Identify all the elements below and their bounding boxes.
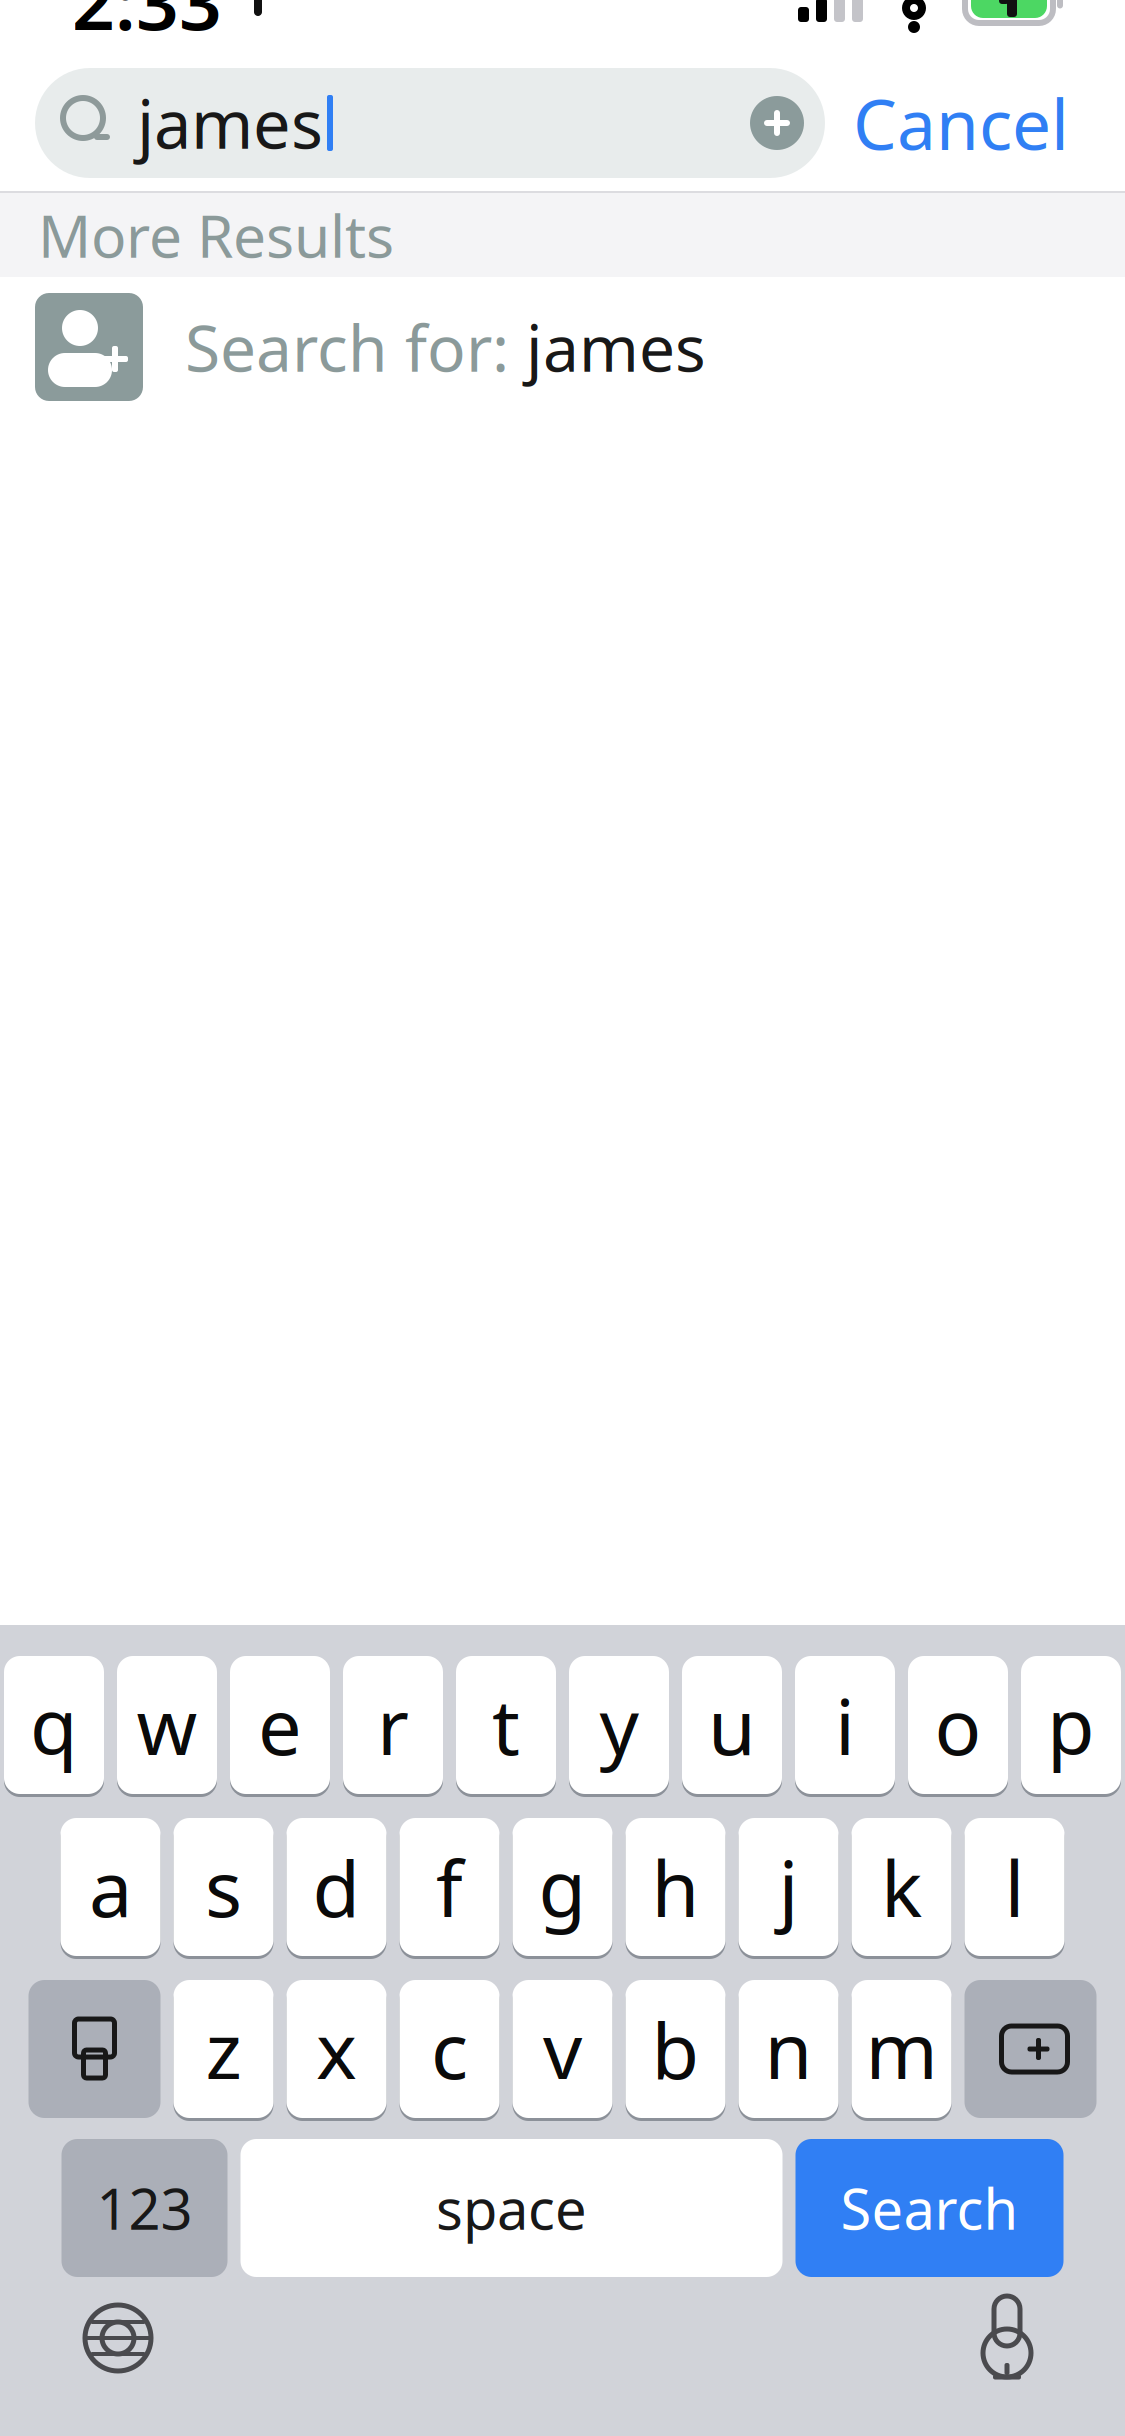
staticText: q <box>30 1674 78 1776</box>
button[interactable]: Shift <box>28 1980 160 2118</box>
button[interactable]: Dictate <box>947 2283 1067 2393</box>
staticText: p <box>1047 1674 1095 1776</box>
staticText: x <box>316 1998 357 2100</box>
staticText: b <box>651 1998 699 2100</box>
button[interactable]: i <box>795 1653 895 1797</box>
staticText: n <box>764 1998 812 2100</box>
staticText: u <box>708 1674 756 1776</box>
staticText: k <box>881 1836 922 1938</box>
button[interactable]: z <box>173 1977 273 2121</box>
staticText: v <box>543 1998 582 2100</box>
button[interactable]: p <box>1021 1653 1121 1797</box>
button[interactable]: m <box>851 1977 951 2121</box>
staticText: s <box>205 1836 242 1938</box>
staticText: z <box>205 1998 241 2100</box>
staticText: space <box>436 2171 587 2245</box>
staticText: h <box>651 1836 699 1938</box>
button[interactable]: Next keyboard <box>58 2283 178 2393</box>
staticText: t <box>492 1674 520 1776</box>
button[interactable]: 123 <box>61 2139 227 2277</box>
staticText: james <box>137 79 323 167</box>
button[interactable]: f <box>399 1815 499 1959</box>
staticText: y <box>599 1674 638 1776</box>
button[interactable]: b <box>625 1977 725 2121</box>
staticText: Cancel <box>853 77 1069 169</box>
staticText: Search for: <box>185 304 526 389</box>
button[interactable]: Cancel <box>825 68 1097 178</box>
button[interactable]: y <box>569 1653 669 1797</box>
staticText: c <box>431 1998 468 2100</box>
button[interactable]: Search <box>795 2139 1063 2277</box>
button[interactable]: l <box>964 1815 1064 1959</box>
button[interactable]: t <box>456 1653 556 1797</box>
staticText: j <box>778 1836 798 1938</box>
button[interactable]: r <box>343 1653 443 1797</box>
staticText: f <box>436 1836 463 1938</box>
staticText: w <box>136 1674 197 1776</box>
button[interactable]: e <box>230 1653 330 1797</box>
staticText: Search <box>840 2171 1018 2245</box>
staticText: 2:33 <box>72 0 222 51</box>
button[interactable]: o <box>908 1653 1008 1797</box>
staticText: 123 <box>96 2171 192 2245</box>
staticText: james <box>526 304 706 389</box>
button[interactable]: v <box>512 1977 612 2121</box>
button[interactable]: q <box>4 1653 104 1797</box>
button[interactable]: c <box>399 1977 499 2121</box>
staticText: m <box>865 1998 937 2100</box>
button[interactable]: s <box>173 1815 273 1959</box>
staticText: g <box>538 1836 586 1938</box>
staticText: o <box>934 1674 981 1776</box>
staticText: e <box>258 1674 302 1776</box>
button[interactable]: x <box>286 1977 386 2121</box>
button[interactable]: Clear text <box>729 68 825 178</box>
button[interactable]: space <box>240 2139 782 2277</box>
staticText: a <box>89 1836 132 1938</box>
button[interactable]: h <box>625 1815 725 1959</box>
button[interactable]: j <box>738 1815 838 1959</box>
staticText: l <box>1004 1836 1024 1938</box>
staticText: d <box>312 1836 360 1938</box>
staticText: r <box>377 1674 409 1776</box>
button[interactable]: n <box>738 1977 838 2121</box>
staticText: More Results <box>38 196 394 274</box>
button[interactable]: k <box>851 1815 951 1959</box>
button[interactable]: a <box>60 1815 160 1959</box>
button[interactable]: w <box>117 1653 217 1797</box>
button[interactable]: u <box>682 1653 782 1797</box>
button[interactable]: d <box>286 1815 386 1959</box>
staticText: i <box>835 1674 855 1776</box>
button[interactable]: Delete <box>964 1980 1096 2118</box>
button[interactable]: Search for: <box>0 277 1125 417</box>
button[interactable]: g <box>512 1815 612 1959</box>
